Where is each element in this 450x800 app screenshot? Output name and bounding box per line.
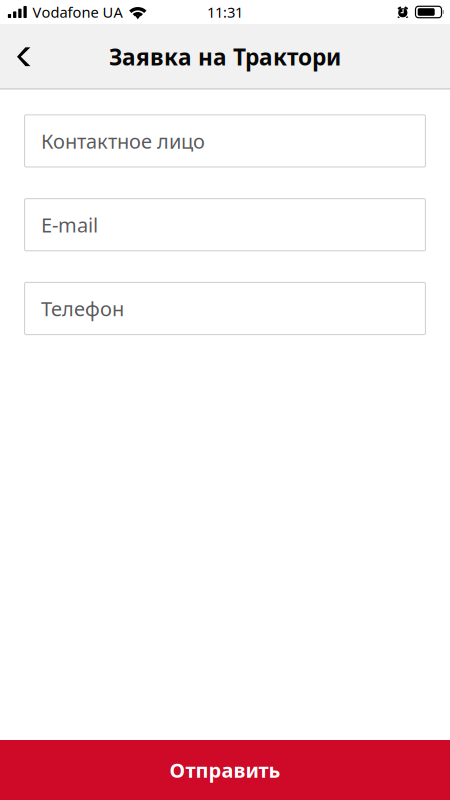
staticText: Заявка на Трактори bbox=[109, 42, 341, 72]
staticText: Контактное лицо bbox=[41, 128, 205, 154]
button[interactable]: Back bbox=[0, 25, 44, 89]
staticText: Vodafone UA bbox=[33, 2, 123, 22]
button[interactable]: Телефон bbox=[24, 282, 426, 335]
button[interactable]: E-mail bbox=[24, 198, 426, 251]
staticText: E-mail bbox=[41, 211, 98, 238]
button[interactable]: Отправить bbox=[0, 740, 450, 800]
staticText: Отправить bbox=[169, 757, 280, 783]
staticText: Телефон bbox=[41, 295, 124, 322]
button[interactable]: Контактное лицо bbox=[24, 114, 426, 167]
staticText: 11:31 bbox=[207, 2, 243, 22]
